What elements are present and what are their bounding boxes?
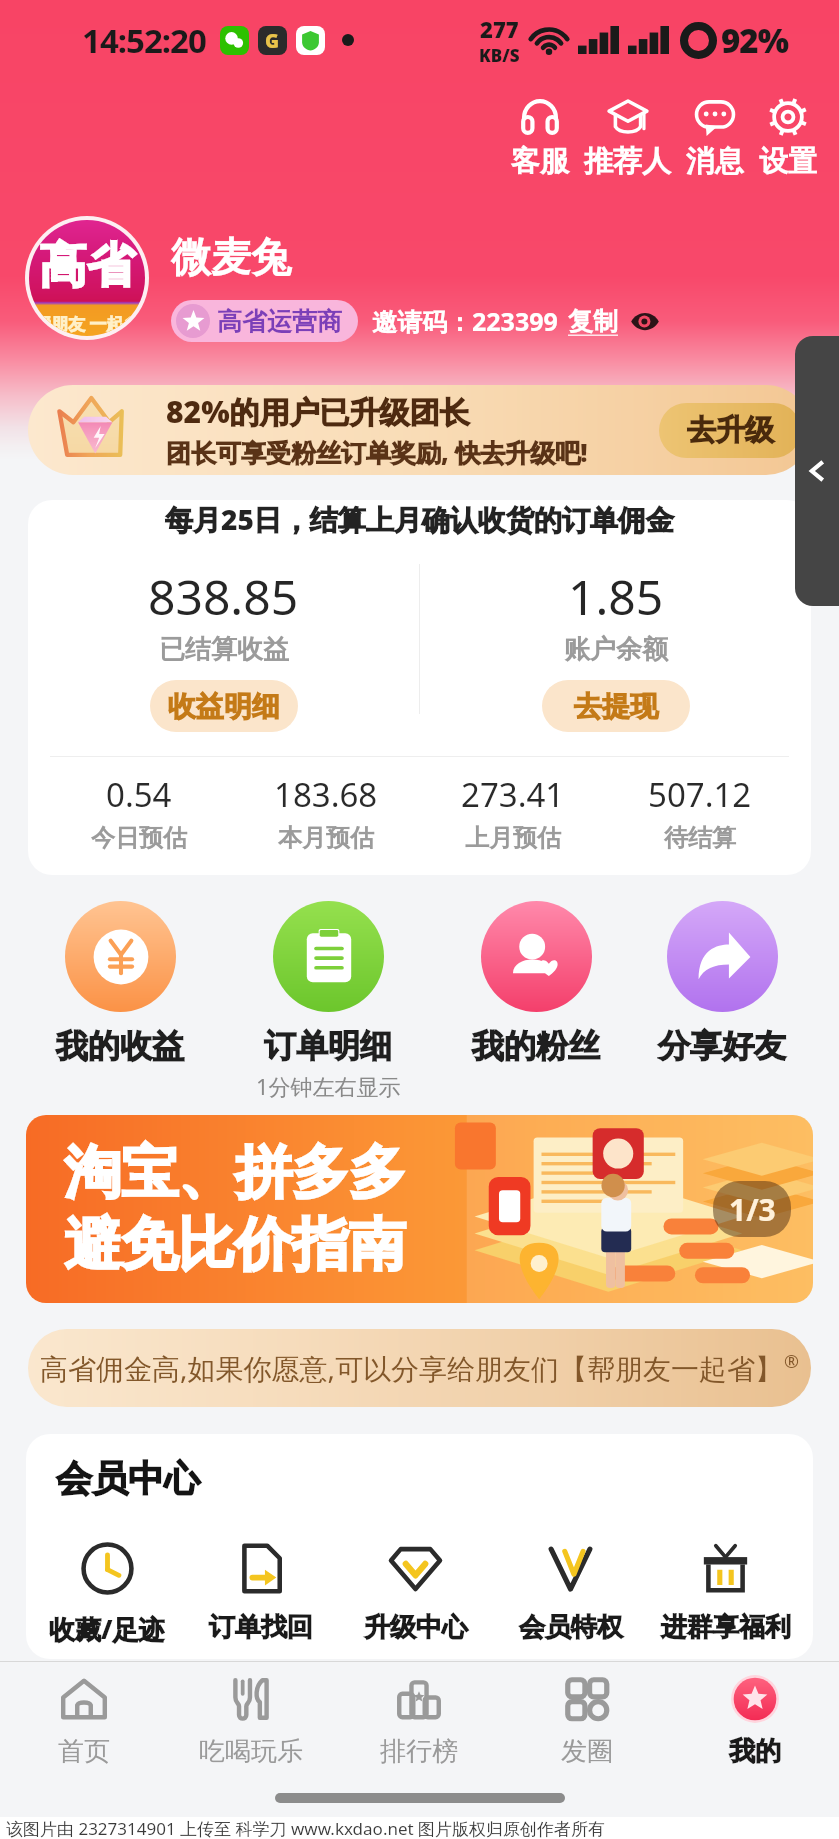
staticText: 我的 xyxy=(729,1735,781,1768)
staticText: 去升级 xyxy=(687,412,774,449)
staticText: 分享好友 xyxy=(658,1026,786,1066)
staticText: 高省佣金高,如果你愿意,可以分享给朋友们【帮朋友一起省】 xyxy=(40,1349,784,1387)
button[interactable]: 进群享福利 xyxy=(648,1540,803,1644)
staticText: 我的粉丝 xyxy=(472,1026,600,1066)
button[interactable]: 273.41 xyxy=(419,772,606,853)
staticText: 设置 xyxy=(759,143,817,180)
staticText: 0.54 xyxy=(106,772,172,817)
staticText: ® xyxy=(784,1349,799,1374)
staticText: 排行榜 xyxy=(380,1735,458,1768)
staticText: 会员特权 xyxy=(519,1611,623,1644)
staticText: 去提现 xyxy=(574,689,658,724)
staticText: 淘宝、拼多多 xyxy=(64,1137,406,1209)
staticText: 1/3 xyxy=(729,1189,776,1230)
staticText: 账户余额 xyxy=(564,633,668,666)
staticText: 277 xyxy=(480,14,519,44)
button[interactable]: 排行榜 xyxy=(335,1662,503,1778)
staticText: 升级中心 xyxy=(364,1611,468,1644)
staticText: 推荐人 xyxy=(584,143,671,180)
staticText: 订单明细 xyxy=(264,1026,392,1066)
button[interactable]: 0.54 xyxy=(46,772,232,853)
staticText: 我的收益 xyxy=(56,1026,184,1066)
button[interactable]: 高省运营商 xyxy=(171,300,358,342)
button[interactable]: 客服 xyxy=(507,96,573,180)
staticText: 507.12 xyxy=(648,772,752,817)
button[interactable]: Toggle visibility xyxy=(630,306,660,336)
button[interactable]: 高省佣金高,如果你愿意,可以分享给朋友们【帮朋友一起省】 xyxy=(28,1329,811,1407)
button[interactable]: 收益明细 xyxy=(150,680,298,732)
button[interactable]: 分享好友 xyxy=(622,901,822,1066)
button[interactable]: 507.12 xyxy=(606,772,793,853)
staticText: G xyxy=(265,28,280,54)
staticText: 帮朋友 一起省 xyxy=(34,312,141,335)
staticText: 订单找回 xyxy=(209,1611,313,1644)
staticText: 273.41 xyxy=(461,772,565,817)
button[interactable]: 会员特权 xyxy=(493,1540,648,1644)
staticText: 待结算 xyxy=(664,823,736,853)
staticText: 首页 xyxy=(58,1735,110,1768)
staticText: 高省 xyxy=(39,236,135,296)
staticText: 会员中心 xyxy=(56,1456,200,1501)
staticText: 每月25日，结算上月确认收货的订单佣金 xyxy=(165,500,674,538)
staticText: 消息 xyxy=(686,143,744,180)
button[interactable]: 去提现 xyxy=(542,680,690,732)
button[interactable]: 淘宝、拼多多 xyxy=(26,1115,813,1303)
staticText: 上月预估 xyxy=(465,823,561,853)
staticText: 14:52:20 xyxy=(82,18,206,63)
button[interactable]: 设置 xyxy=(755,96,821,180)
staticText: 避免比价指南 xyxy=(64,1209,406,1281)
button[interactable]: 我的收益 xyxy=(20,901,220,1066)
staticText: 1.85 xyxy=(568,564,664,629)
button[interactable]: 推荐人 xyxy=(580,96,675,180)
button[interactable]: 复制 xyxy=(568,306,618,337)
staticText: 已结算收益 xyxy=(159,633,289,666)
button[interactable]: 消息 xyxy=(682,96,748,180)
button[interactable]: Open drawer xyxy=(795,336,839,606)
button[interactable]: 发圈 xyxy=(503,1662,671,1778)
button[interactable]: 订单找回 xyxy=(184,1540,338,1644)
button[interactable]: 去升级 xyxy=(659,403,801,458)
staticText: 高省运营商 xyxy=(217,306,342,337)
staticText: 82%的用户已升级团长 xyxy=(166,391,470,432)
staticText: 该图片由 2327314901 上传至 科学刀 www.kxdao.net 图片… xyxy=(6,1817,606,1839)
staticText: 微麦兔 xyxy=(171,232,291,282)
button[interactable]: 订单明细 xyxy=(228,901,428,1101)
staticText: 收藏/足迹 xyxy=(49,1611,165,1647)
staticText: 本月预估 xyxy=(278,823,374,853)
staticText: 团长可享受粉丝订单奖励, 快去升级吧! xyxy=(166,435,588,469)
staticText: 进群享福利 xyxy=(661,1611,791,1644)
staticText: 183.68 xyxy=(274,772,378,817)
staticText: 1分钟左右显示 xyxy=(256,1071,401,1101)
staticText: KB/S xyxy=(479,44,520,67)
button[interactable]: 82%的用户已升级团长 xyxy=(28,385,811,475)
staticText: 客服 xyxy=(511,143,569,180)
button[interactable]: 收藏/足迹 xyxy=(30,1540,184,1647)
staticText: 92% xyxy=(721,18,788,63)
staticText: 今日预估 xyxy=(91,823,187,853)
button[interactable]: 183.68 xyxy=(232,772,419,853)
button[interactable]: 吃喝玩乐 xyxy=(167,1662,335,1778)
button[interactable]: 我的粉丝 xyxy=(436,901,636,1066)
staticText: 838.85 xyxy=(148,564,299,629)
button[interactable]: 我的 xyxy=(671,1662,839,1778)
staticText: 邀请码：223399 xyxy=(372,304,558,338)
staticText: 收益明细 xyxy=(168,689,280,724)
button[interactable]: 升级中心 xyxy=(338,1540,493,1644)
staticText: 发圈 xyxy=(561,1735,613,1768)
staticText: 吃喝玩乐 xyxy=(199,1735,303,1768)
button[interactable]: 首页 xyxy=(0,1662,167,1778)
